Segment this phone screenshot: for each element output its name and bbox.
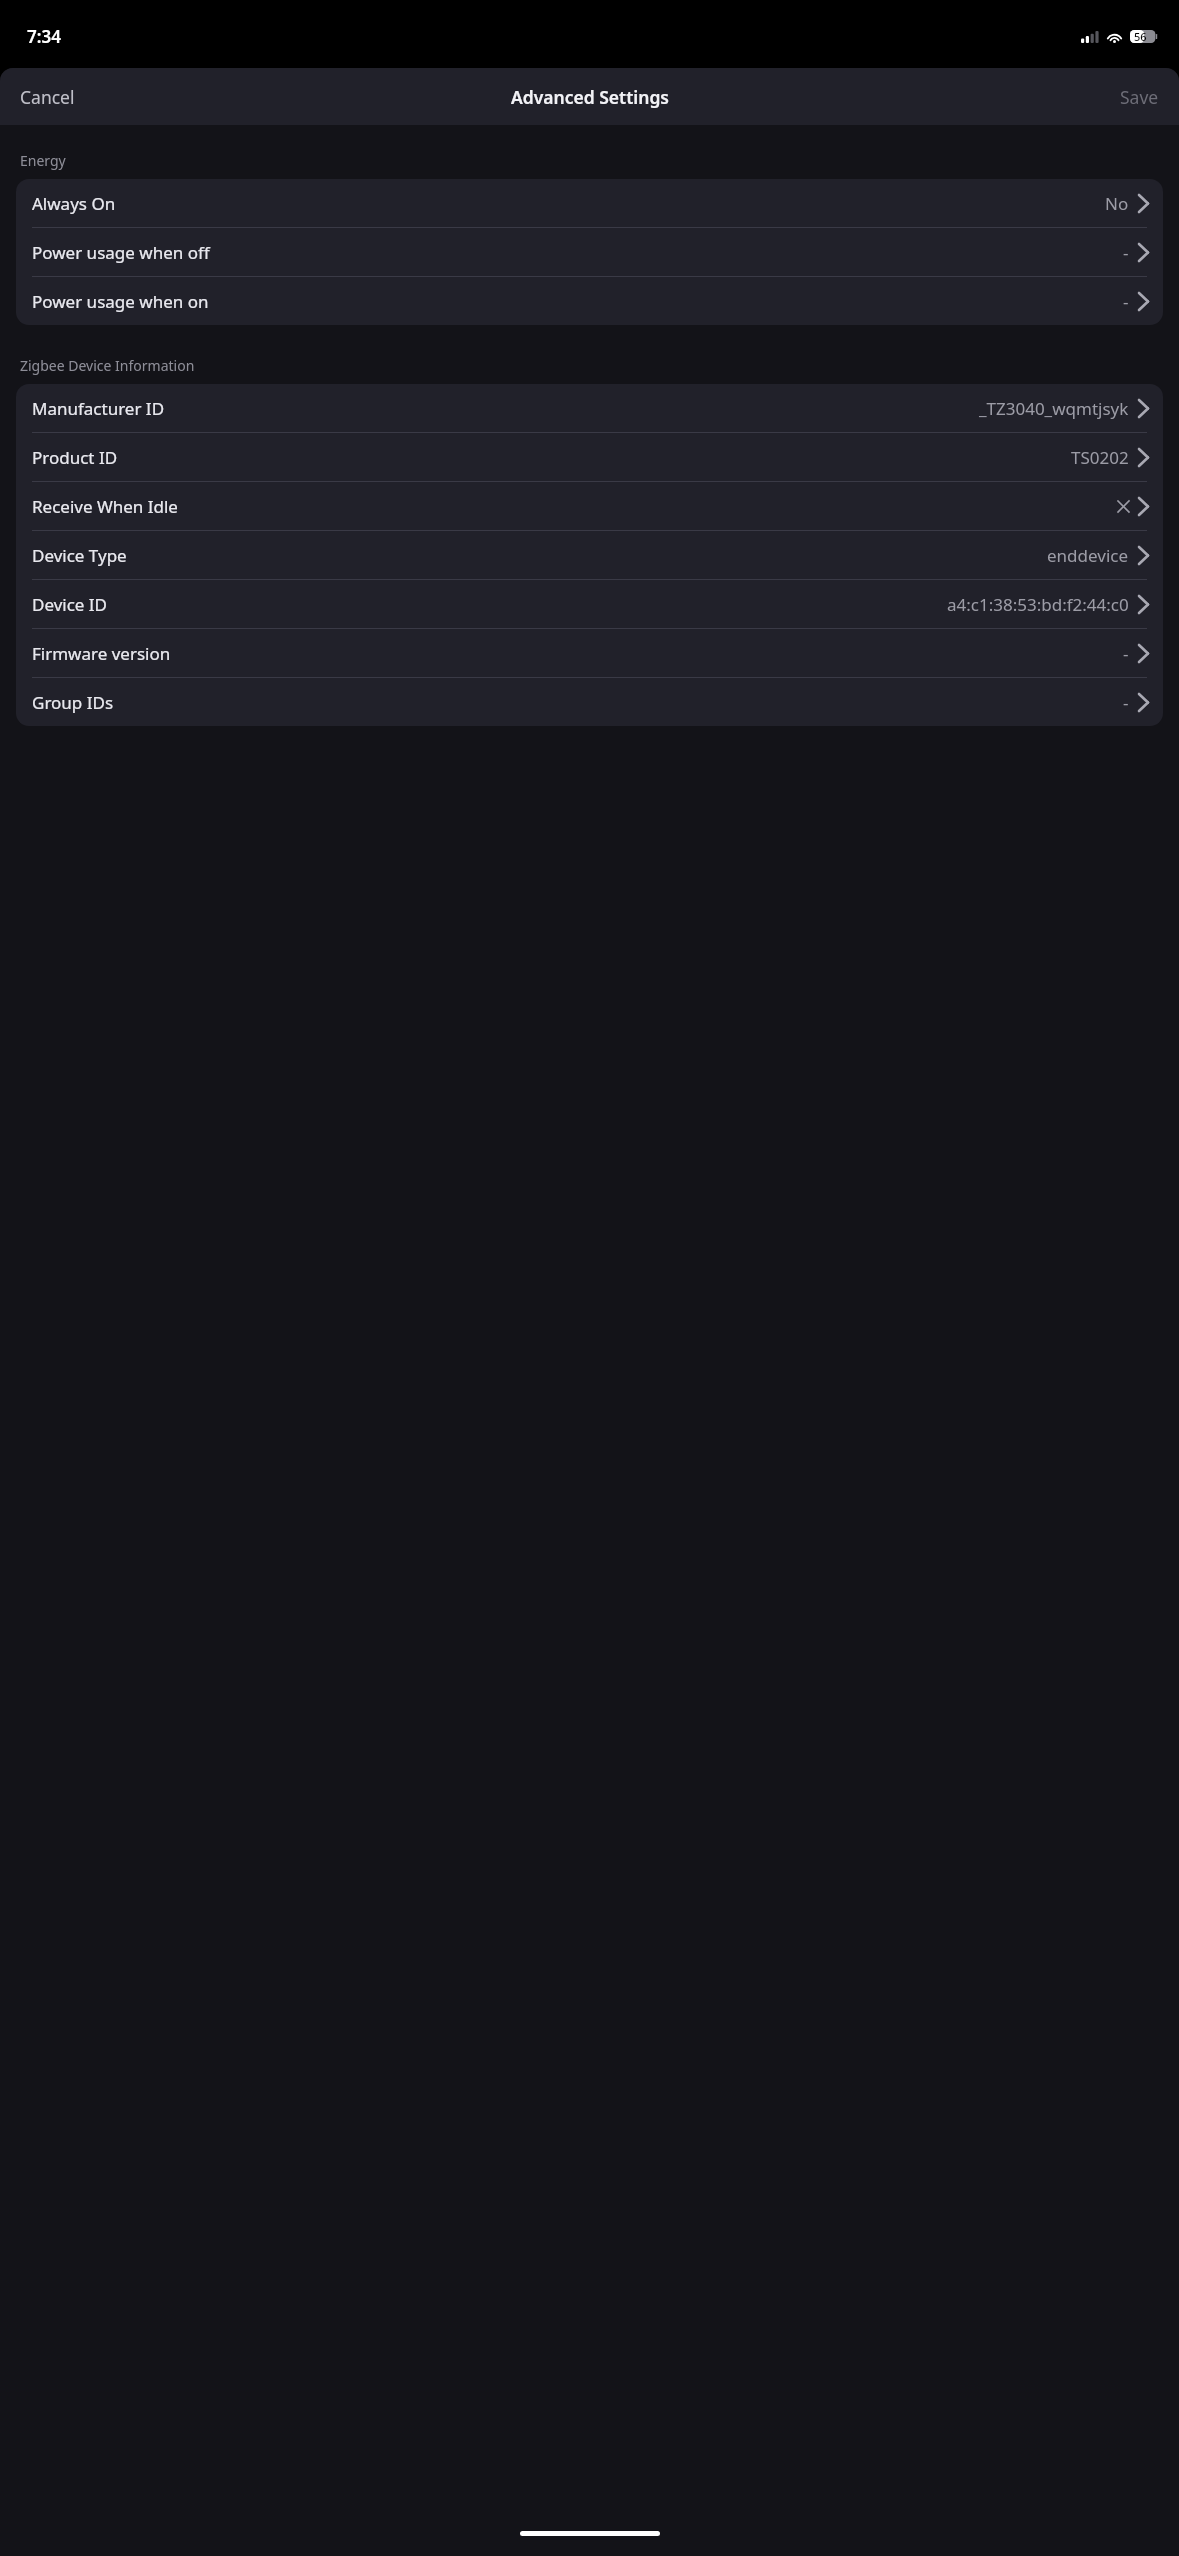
staticText: Cancel [20,85,75,109]
staticText: Receive When Idle [32,495,178,518]
staticText: - [1123,691,1129,714]
button[interactable]: Firmware version [16,629,1163,677]
staticText: - [1123,642,1129,665]
staticText: - [1123,290,1129,313]
button[interactable]: Receive When Idle [16,482,1163,530]
button[interactable]: Always On [16,179,1163,227]
staticText: a4:c1:38:53:bd:f2:44:c0 [947,593,1129,616]
staticText: Energy [20,151,66,170]
staticText: Device Type [32,544,127,567]
staticText: Firmware version [32,642,171,665]
staticText: 56 [1134,29,1147,44]
staticText: Device ID [32,593,108,616]
staticText: Product ID [32,446,118,469]
staticText: Group IDs [32,691,114,714]
staticText: Zigbee Device Information [20,356,195,375]
button[interactable]: Power usage when off [16,228,1163,276]
staticText: - [1123,241,1129,264]
button[interactable]: Product ID [16,433,1163,481]
button[interactable]: Group IDs [16,678,1163,726]
staticText: TS0202 [1071,446,1129,469]
button[interactable]: Save [1110,77,1169,117]
button[interactable]: Cancel [10,77,85,117]
button[interactable]: Device Type [16,531,1163,579]
button[interactable]: Manufacturer ID [16,384,1163,432]
button[interactable]: Device ID [16,580,1163,628]
staticText: Always On [32,192,116,215]
button[interactable]: Power usage when on [16,277,1163,325]
staticText: Power usage when on [32,290,209,313]
staticText: Save [1120,85,1159,109]
staticText: Power usage when off [32,241,210,264]
staticText: enddevice [1047,544,1129,567]
staticText: Advanced Settings [511,85,669,109]
staticText: 7:34 [27,25,61,48]
staticText: _TZ3040_wqmtjsyk [979,397,1129,420]
staticText: Manufacturer ID [32,397,165,420]
staticText: No [1105,192,1129,215]
